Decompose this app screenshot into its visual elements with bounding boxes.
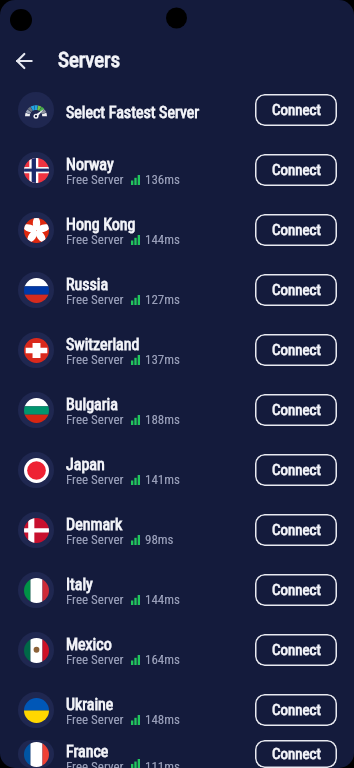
button[interactable]: Connect: [255, 514, 337, 546]
staticText: 144ms: [145, 592, 180, 607]
button[interactable]: Norway: [0, 140, 354, 200]
staticText: Servers: [58, 48, 120, 73]
button[interactable]: Switzerland: [0, 320, 354, 380]
button[interactable]: Connect: [255, 574, 337, 606]
staticText: Free Server: [66, 652, 124, 667]
staticText: Mexico: [66, 635, 112, 654]
staticText: Connect: [272, 341, 321, 359]
staticText: 188ms: [145, 412, 180, 427]
staticText: Ukraine: [66, 695, 114, 714]
staticText: Connect: [272, 161, 321, 179]
staticText: Free Server: [66, 759, 124, 768]
staticText: 136ms: [145, 172, 180, 187]
staticText: Free Server: [66, 472, 124, 487]
staticText: Connect: [272, 521, 321, 539]
staticText: Connect: [272, 281, 321, 299]
button[interactable]: Denmark: [0, 500, 354, 560]
staticText: Connect: [272, 641, 321, 659]
button[interactable]: Connect: [255, 154, 337, 186]
button[interactable]: Back: [7, 44, 40, 77]
staticText: Bulgaria: [66, 395, 118, 414]
button[interactable]: Connect: [255, 634, 337, 666]
button[interactable]: Connect: [255, 394, 337, 426]
staticText: Connect: [272, 461, 321, 479]
staticText: Free Server: [66, 352, 124, 367]
staticText: Connect: [272, 221, 321, 239]
staticText: Connect: [272, 101, 321, 119]
staticText: Select Fastest Server: [66, 103, 200, 122]
staticText: Japan: [66, 455, 105, 474]
staticText: Free Server: [66, 172, 124, 187]
staticText: Russia: [66, 275, 109, 294]
staticText: Free Server: [66, 292, 124, 307]
button[interactable]: Connect: [255, 214, 337, 246]
staticText: Connect: [272, 701, 321, 719]
button[interactable]: Connect: [255, 274, 337, 306]
button[interactable]: Hong Kong: [0, 200, 354, 260]
staticText: 137ms: [145, 352, 180, 367]
staticText: 144ms: [145, 232, 180, 247]
button[interactable]: Russia: [0, 260, 354, 320]
staticText: Norway: [66, 155, 114, 174]
staticText: 98ms: [145, 532, 174, 547]
staticText: Connect: [272, 581, 321, 599]
staticText: Free Server: [66, 712, 124, 727]
staticText: Denmark: [66, 515, 123, 534]
button[interactable]: Mexico: [0, 620, 354, 680]
staticText: Hong Kong: [66, 215, 136, 234]
button[interactable]: Bulgaria: [0, 380, 354, 440]
staticText: Connect: [272, 401, 321, 419]
button[interactable]: Connect: [255, 740, 337, 768]
staticText: 148ms: [145, 712, 180, 727]
button[interactable]: Italy: [0, 560, 354, 620]
button[interactable]: Connect: [255, 94, 337, 126]
staticText: Free Server: [66, 592, 124, 607]
staticText: Switzerland: [66, 335, 140, 354]
button[interactable]: Select Fastest Server: [0, 80, 354, 140]
button[interactable]: France: [0, 740, 354, 768]
button[interactable]: Connect: [255, 694, 337, 726]
staticText: 164ms: [145, 652, 180, 667]
staticText: Italy: [66, 575, 93, 594]
button[interactable]: Ukraine: [0, 680, 354, 740]
staticText: Connect: [272, 745, 321, 763]
staticText: 141ms: [145, 472, 180, 487]
button[interactable]: Connect: [255, 454, 337, 486]
staticText: Free Server: [66, 532, 124, 547]
staticText: France: [66, 742, 109, 761]
button[interactable]: Japan: [0, 440, 354, 500]
staticText: 127ms: [145, 292, 180, 307]
staticText: Free Server: [66, 232, 124, 247]
staticText: Free Server: [66, 412, 124, 427]
staticText: 111ms: [145, 759, 180, 768]
button[interactable]: Connect: [255, 334, 337, 366]
